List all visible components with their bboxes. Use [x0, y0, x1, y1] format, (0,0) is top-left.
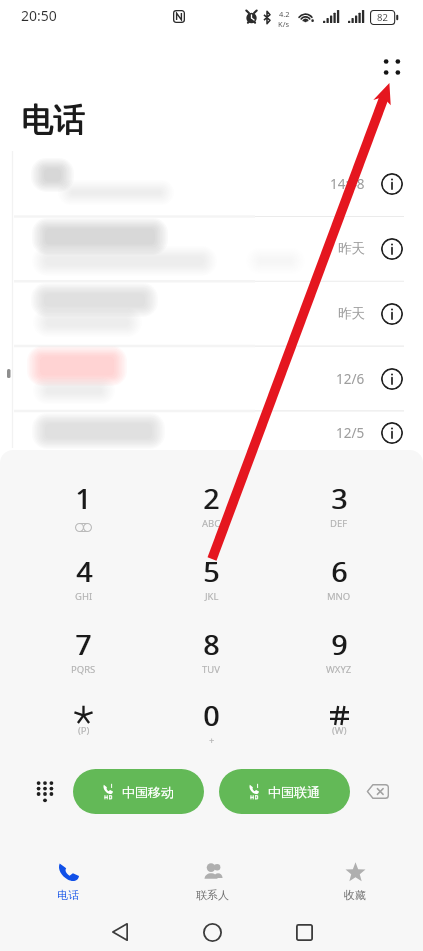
button[interactable]: 5: [147, 552, 275, 614]
button[interactable]: Call details: [381, 422, 403, 444]
staticText: 昨天: [338, 305, 365, 322]
button[interactable]: 昨天: [0, 216, 423, 281]
button[interactable]: 12/5: [0, 411, 423, 455]
button[interactable]: 收藏: [318, 837, 392, 905]
staticText: 2: [203, 479, 220, 517]
staticText: 4.2: [279, 9, 290, 19]
button[interactable]: Recents: [280, 905, 328, 951]
button[interactable]: Call details: [381, 303, 403, 325]
button[interactable]: 14:48: [0, 151, 423, 216]
staticText: 3: [331, 479, 348, 517]
button[interactable]: 1: [20, 479, 147, 541]
staticText: 5: [203, 552, 220, 590]
staticText: 7: [76, 625, 93, 663]
button[interactable]: Delete: [356, 774, 399, 808]
button[interactable]: 4: [20, 552, 147, 614]
staticText: MNO: [327, 590, 351, 603]
staticText: 中国联通: [268, 784, 320, 800]
staticText: (P): [78, 724, 90, 737]
staticText: 4: [76, 552, 93, 590]
staticText: 电话: [57, 888, 79, 902]
button[interactable]: Call details: [381, 238, 403, 260]
staticText: 3: [332, 479, 349, 517]
staticText: 12/6: [336, 370, 365, 388]
staticText: ABC: [202, 517, 221, 530]
staticText: 5: [204, 552, 221, 590]
staticText: WXYZ: [326, 663, 352, 676]
button[interactable]: 电话: [31, 837, 105, 905]
button[interactable]: Back: [96, 905, 144, 951]
button[interactable]: More options: [371, 46, 412, 87]
button[interactable]: Call details: [381, 368, 403, 390]
staticText: 8: [203, 625, 220, 663]
staticText: 0: [204, 696, 221, 734]
button[interactable]: Keypad: [28, 774, 62, 808]
staticText: PQRS: [71, 663, 96, 676]
staticText: TUV: [202, 663, 220, 676]
staticText: JKL: [205, 590, 219, 603]
staticText: 6: [332, 552, 349, 590]
staticText: 昨天: [338, 240, 365, 257]
staticText: 9: [331, 625, 348, 663]
staticText: +: [209, 734, 215, 747]
staticText: 电话: [21, 100, 85, 140]
button[interactable]: 9: [275, 625, 403, 687]
staticText: 电话: [21, 99, 85, 139]
staticText: 1: [75, 479, 92, 517]
staticText: 联系人: [196, 888, 229, 902]
staticText: 6: [331, 552, 348, 590]
staticText: (W): [332, 724, 347, 737]
button[interactable]: (W): [275, 696, 403, 758]
staticText: 0: [203, 696, 220, 734]
staticText: 中国移动: [122, 784, 174, 800]
button[interactable]: 3: [275, 479, 403, 541]
button[interactable]: 6: [275, 552, 403, 614]
button[interactable]: 12/6: [0, 346, 423, 411]
staticText: 14:48: [330, 175, 365, 193]
staticText: 20:50: [21, 6, 57, 25]
button[interactable]: Call details: [381, 173, 403, 195]
staticText: 电话: [22, 100, 86, 140]
button[interactable]: 中国移动: [73, 769, 204, 814]
staticText: 8: [204, 625, 221, 663]
button[interactable]: 0: [147, 696, 275, 758]
button[interactable]: Home: [188, 905, 236, 951]
staticText: 82: [377, 11, 388, 24]
staticText: 9: [332, 625, 349, 663]
button[interactable]: 中国联通: [219, 769, 350, 814]
staticText: 4: [77, 552, 94, 590]
staticText: K/s: [278, 19, 290, 29]
button[interactable]: 2: [147, 479, 275, 541]
button[interactable]: 联系人: [175, 837, 249, 905]
staticText: 收藏: [344, 888, 366, 902]
button[interactable]: 8: [147, 625, 275, 687]
button[interactable]: (P): [20, 696, 147, 758]
button[interactable]: 昨天: [0, 281, 423, 346]
staticText: GHI: [75, 590, 93, 603]
staticText: 1: [76, 479, 93, 517]
button[interactable]: 7: [20, 625, 147, 687]
staticText: 电话: [22, 99, 86, 139]
staticText: 2: [204, 479, 221, 517]
staticText: 7: [75, 625, 92, 663]
staticText: 12/5: [336, 424, 365, 442]
staticText: DEF: [330, 517, 348, 530]
